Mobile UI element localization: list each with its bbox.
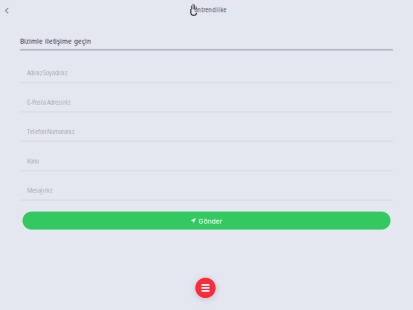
staticText: Bizimle iletişime geçin — [20, 35, 91, 46]
staticText: Adınız Soyadınız — [27, 68, 67, 77]
staticText: ontrendlike — [194, 5, 226, 14]
button[interactable]: Back — [0, 2, 15, 19]
staticText: Konu — [27, 156, 39, 165]
button[interactable]: Gönder — [22, 212, 390, 230]
staticText: Mesajınız — [27, 185, 52, 195]
staticText: E-Posta Adresiniz — [27, 97, 70, 107]
staticText: Telefon Numaranız — [27, 127, 74, 136]
staticText: Gönder — [198, 216, 222, 225]
button[interactable]: Menu — [195, 278, 216, 298]
